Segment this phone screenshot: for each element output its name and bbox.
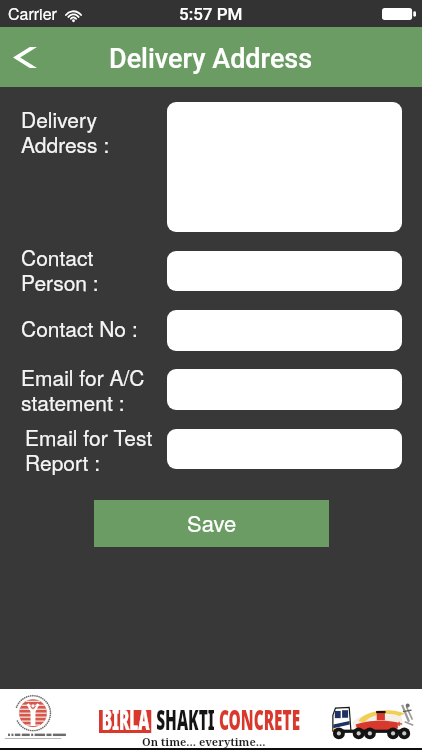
button[interactable]: Email for A/C statement bbox=[167, 369, 402, 410]
button[interactable]: Contact number bbox=[167, 310, 402, 351]
staticText: Contact Person : bbox=[21, 242, 99, 297]
staticText: Email for Test Report : bbox=[25, 422, 153, 477]
button[interactable]: Back bbox=[2, 34, 48, 80]
button[interactable]: Delivery address bbox=[167, 102, 402, 232]
staticText: CONCRETE bbox=[219, 700, 300, 738]
staticText: Contact No : bbox=[21, 313, 138, 343]
staticText: Email for A/C statement : bbox=[21, 362, 145, 417]
button[interactable]: Save bbox=[94, 500, 329, 547]
staticText: Delivery Address bbox=[109, 43, 313, 75]
staticText: On time... everytime... bbox=[142, 734, 266, 749]
button[interactable]: Contact person bbox=[167, 251, 402, 291]
staticText: Delivery Address : bbox=[21, 104, 110, 159]
button[interactable]: Email for test report bbox=[167, 429, 402, 469]
staticText: BIRLA bbox=[102, 700, 150, 738]
staticText: 5:57 PM bbox=[179, 4, 243, 24]
staticText: Carrier bbox=[8, 2, 57, 25]
staticText: Save bbox=[187, 507, 237, 539]
staticText: SHAKTI bbox=[156, 700, 215, 738]
